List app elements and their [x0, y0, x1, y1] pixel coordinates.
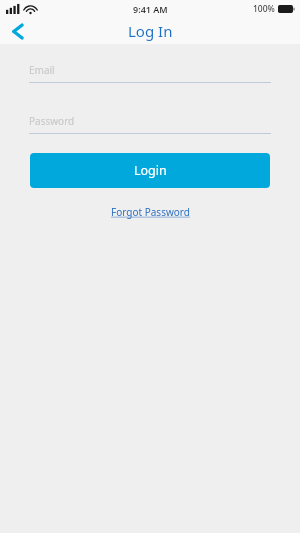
- staticText: 9:41 AM: [133, 3, 168, 15]
- staticText: Password: [29, 114, 75, 128]
- button[interactable]: Forgot Password: [105, 202, 196, 222]
- staticText: Login: [134, 162, 167, 179]
- button[interactable]: Password: [29, 114, 271, 134]
- staticText: Forgot Password: [111, 205, 190, 219]
- button[interactable]: Email: [29, 63, 271, 83]
- button[interactable]: Back: [0, 18, 34, 44]
- staticText: Log In: [128, 21, 173, 41]
- staticText: Email: [29, 63, 55, 77]
- button[interactable]: Login: [30, 153, 270, 188]
- staticText: 100%: [253, 3, 275, 15]
